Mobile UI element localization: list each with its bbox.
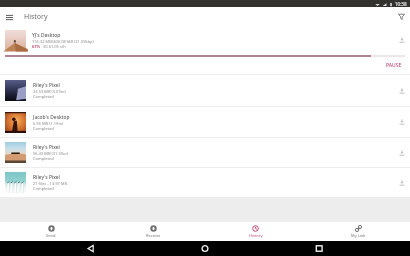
- staticText: Completed: [33, 156, 54, 161]
- staticText: History: [249, 233, 263, 238]
- staticText: History: [24, 12, 48, 22]
- staticText: 10:38: [395, 1, 407, 7]
- button[interactable]: Back: [0, 241, 136, 256]
- button[interactable]: Save to device: [395, 84, 409, 98]
- staticText: 21 files - 13.97 MB: [33, 181, 68, 186]
- staticText: Send: [46, 233, 56, 238]
- button[interactable]: Open navigation menu: [1, 9, 17, 25]
- staticText: Completed: [33, 186, 54, 191]
- button[interactable]: Receive: [102, 222, 204, 241]
- button[interactable]: Save to device: [395, 115, 409, 129]
- button[interactable]: Filter: [392, 8, 410, 26]
- button[interactable]: Save to device: [395, 176, 409, 190]
- button[interactable]: YJ's Desktop: [0, 26, 410, 74]
- staticText: 116.32 MB/400.08 MB (21.59kbp): [32, 39, 94, 44]
- button[interactable]: My Link: [307, 222, 410, 241]
- staticText: 56.43 MB (31.59m): [33, 151, 68, 156]
- staticText: PAUSE: [386, 62, 402, 69]
- staticText: Riley's Pixel: [33, 82, 60, 89]
- button[interactable]: Save to device: [395, 146, 409, 160]
- staticText: Completed: [33, 94, 54, 99]
- button[interactable]: Send: [0, 222, 102, 241]
- staticText: 30.61.05 s/h: [43, 44, 66, 49]
- staticText: 67%: [32, 44, 41, 49]
- button[interactable]: Home: [136, 241, 273, 256]
- staticText: Completed: [33, 126, 54, 131]
- button[interactable]: History: [204, 222, 307, 241]
- staticText: YJ's Desktop: [32, 32, 61, 39]
- button[interactable]: Riley's Pixel: [0, 138, 410, 167]
- button[interactable]: Jacob's Desktop: [0, 107, 410, 137]
- button[interactable]: Riley's Pixel: [0, 75, 410, 106]
- staticText: My Link: [351, 233, 366, 238]
- staticText: Riley's Pixel: [33, 144, 60, 151]
- button[interactable]: Riley's Pixel: [0, 168, 410, 197]
- staticText: Jacob's Desktop: [33, 114, 70, 121]
- button[interactable]: Save to device: [395, 33, 409, 47]
- button[interactable]: PAUSE: [377, 59, 410, 72]
- staticText: 23.53 MB (3.59m): [33, 89, 66, 94]
- staticText: 6.95 MB (1.19m): [33, 121, 64, 126]
- button[interactable]: Recent apps: [273, 241, 410, 256]
- staticText: Receive: [146, 233, 161, 238]
- staticText: Riley's Pixel: [33, 174, 60, 181]
